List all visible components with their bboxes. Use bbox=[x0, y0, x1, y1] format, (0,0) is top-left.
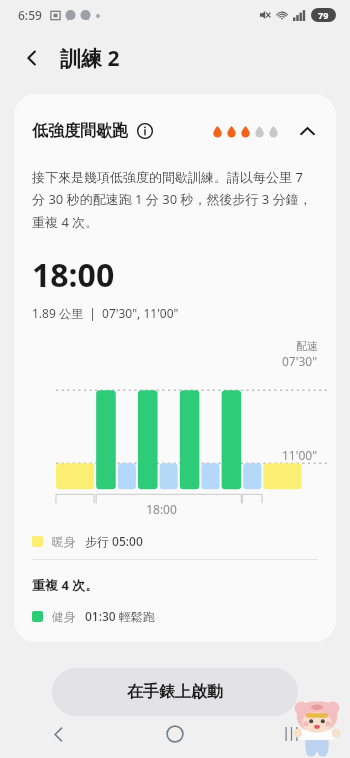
staticText: 重複 4 次。 bbox=[32, 576, 99, 594]
staticText: 18:00 bbox=[146, 501, 177, 517]
staticText: 01:30 輕鬆跑 bbox=[85, 608, 155, 624]
button[interactable]: Back bbox=[14, 40, 50, 76]
staticText: 暖身 bbox=[52, 534, 76, 549]
staticText: 低強度間歇跑 bbox=[32, 121, 128, 141]
staticText: 在手錶上啟動 bbox=[127, 682, 223, 702]
staticText: 訓練 2 bbox=[60, 44, 120, 73]
staticText: 18:00 bbox=[32, 253, 115, 297]
button[interactable]: Information bbox=[134, 120, 156, 142]
staticText: 07'30" bbox=[282, 353, 318, 369]
staticText: 步行 05:00 bbox=[85, 533, 143, 549]
staticText: 79 bbox=[318, 9, 329, 21]
staticText: 6:59 bbox=[18, 7, 42, 23]
button[interactable]: Home bbox=[116, 710, 233, 758]
button[interactable]: Collapse bbox=[292, 116, 322, 146]
button[interactable]: Recent apps bbox=[233, 710, 350, 758]
staticText: 11'00" bbox=[282, 447, 318, 463]
staticText: 健身 bbox=[52, 609, 76, 624]
button[interactable]: Back bbox=[0, 710, 116, 758]
staticText: 配速 bbox=[296, 339, 318, 353]
staticText: 接下來是幾項低強度的間歇訓練。請以每公里 7 分 30 秒的配速跑 1 分 30… bbox=[32, 168, 318, 231]
staticText: 1.89 公里 | 07'30", 11'00" bbox=[32, 305, 179, 321]
button[interactable]: 在手錶上啟動 bbox=[52, 668, 298, 716]
